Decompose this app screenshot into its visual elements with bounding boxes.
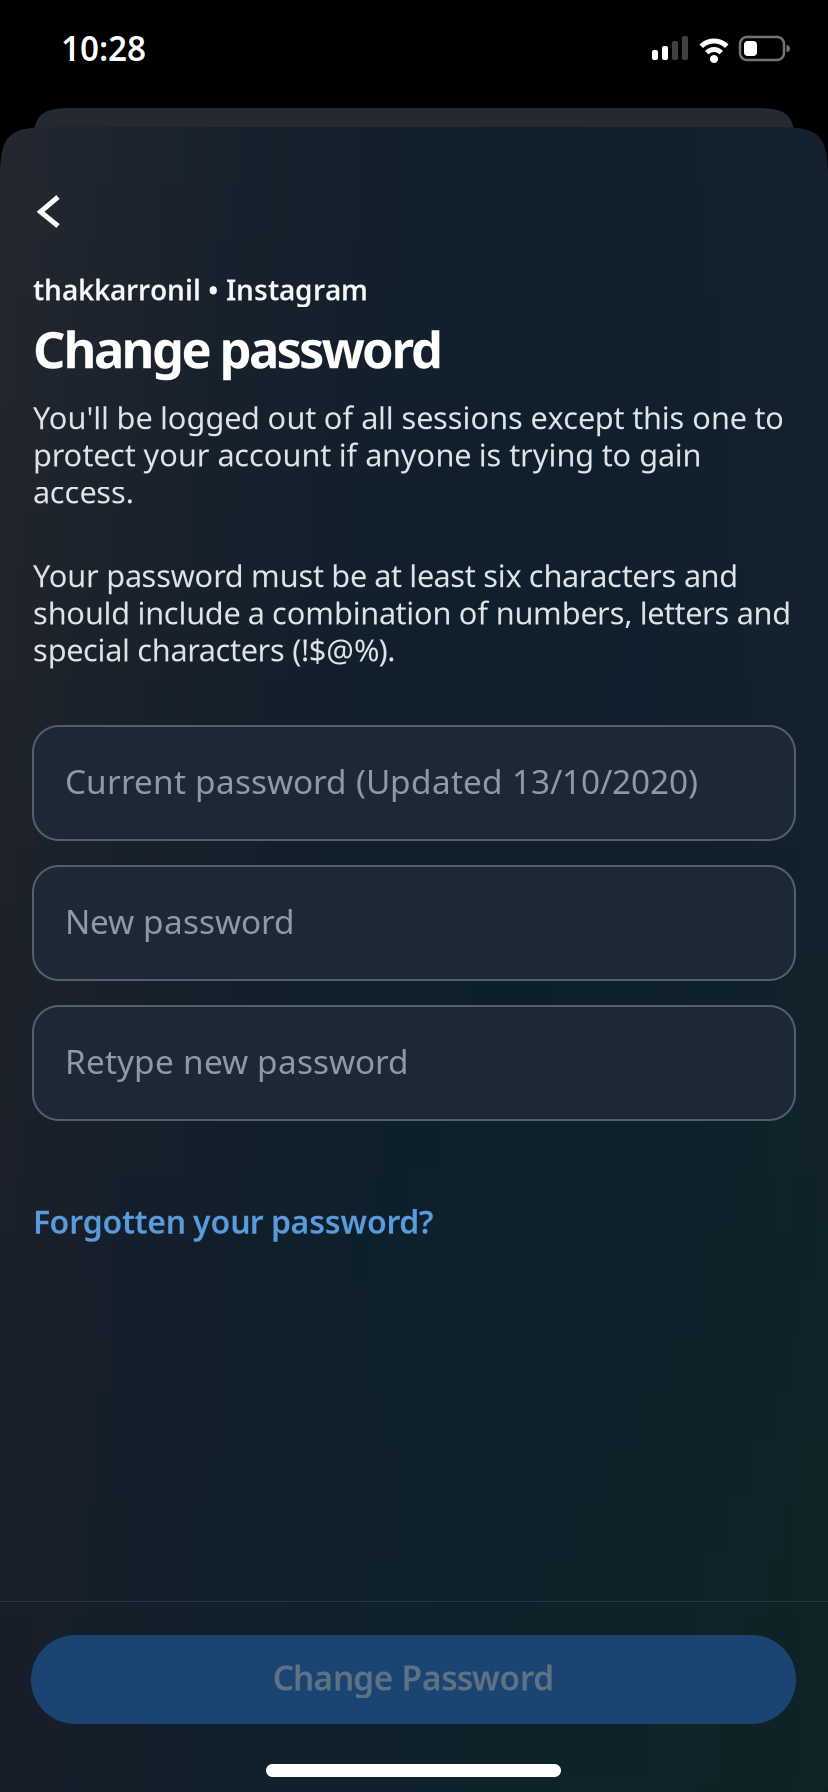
staticText: thakkarronil • Instagram: [33, 271, 368, 308]
button[interactable]: Current password (Updated 13/10/2020): [33, 726, 795, 840]
button[interactable]: Retype new password: [33, 1006, 795, 1120]
button[interactable]: New password: [33, 866, 795, 980]
staticText: You'll be logged out of all sessions exc…: [33, 397, 784, 512]
staticText: Your password must be at least six chara…: [33, 555, 791, 670]
staticText: New password: [65, 899, 295, 943]
staticText: Retype new password: [65, 1039, 409, 1083]
staticText: Change Password: [273, 1655, 554, 1700]
staticText: Current password (Updated 13/10/2020): [65, 759, 698, 803]
button[interactable]: Forgotten your password?: [33, 1200, 434, 1242]
staticText: Forgotten your password?: [33, 1200, 434, 1242]
button[interactable]: Back: [22, 184, 78, 240]
staticText: 10:28: [61, 26, 146, 70]
staticText: Change password: [33, 315, 443, 382]
button[interactable]: Change Password: [31, 1635, 796, 1724]
